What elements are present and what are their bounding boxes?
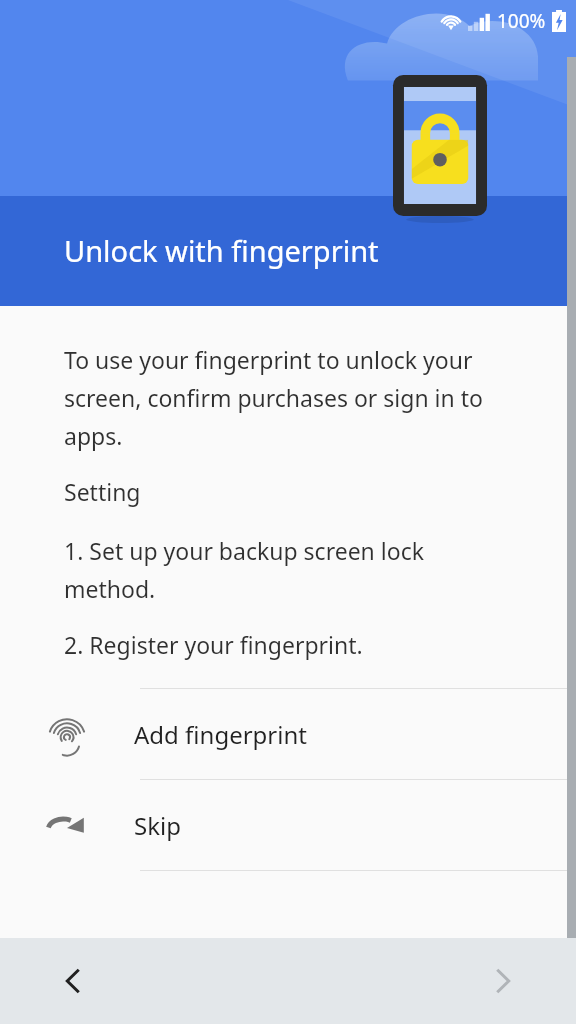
staticText: To use your fingerprint to unlock your s… xyxy=(64,344,506,452)
staticText: Skip xyxy=(134,809,181,842)
staticText: 1. Set up your backup screen lock method… xyxy=(64,535,506,605)
button[interactable]: Next xyxy=(430,938,576,1024)
staticText: Add fingerprint xyxy=(134,718,307,751)
button[interactable]: Back xyxy=(0,938,146,1024)
button[interactable]: Add fingerprint xyxy=(0,689,576,779)
staticText: 2. Register your fingerprint. xyxy=(64,629,363,660)
button[interactable]: Skip xyxy=(0,780,576,870)
staticText: 100% xyxy=(497,8,546,34)
staticText: Unlock with fingerprint xyxy=(64,231,379,270)
staticText: Setting xyxy=(64,476,141,507)
